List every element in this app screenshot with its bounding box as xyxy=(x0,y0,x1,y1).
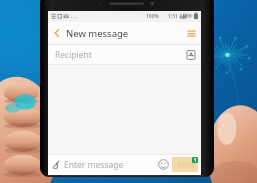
staticText: New message xyxy=(66,27,129,40)
button[interactable]: More options xyxy=(181,22,201,44)
staticText: Recipient xyxy=(55,49,92,61)
staticText: 100% xyxy=(146,13,159,20)
staticText: Send xyxy=(177,160,194,170)
staticText: 1:51 AM xyxy=(168,13,188,20)
staticText: Enter message xyxy=(64,159,124,171)
button[interactable]: Recipient xyxy=(48,45,201,64)
button[interactable]: Add recipient from contacts xyxy=(181,45,201,64)
button[interactable]: Navigate up xyxy=(48,22,66,44)
button[interactable]: Enter message xyxy=(64,154,155,175)
button[interactable]: Send message xyxy=(172,157,198,172)
button[interactable]: Attach xyxy=(48,154,64,175)
staticText: 1 xyxy=(194,157,197,163)
button[interactable]: Insert emoji xyxy=(155,154,172,175)
